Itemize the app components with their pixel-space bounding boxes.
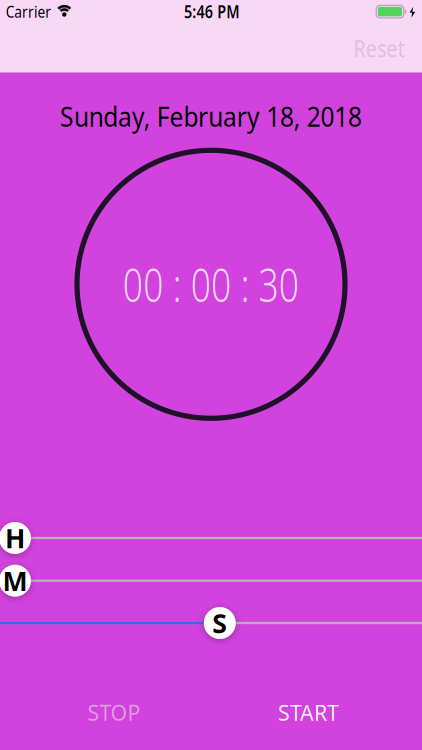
staticText: H: [5, 520, 25, 556]
staticText: Carrier: [2, 1, 55, 22]
button[interactable]: H slider: [0, 522, 31, 554]
staticText: Sunday, February 18, 2018: [47, 99, 375, 134]
staticText: 5:46 PM: [178, 0, 245, 23]
button[interactable]: STOP: [87, 698, 140, 727]
staticText: M: [2, 563, 27, 598]
button[interactable]: S slider: [204, 607, 236, 639]
button[interactable]: M slider: [0, 565, 31, 597]
staticText: S: [212, 605, 227, 641]
staticText: 00 : 00 : 30: [98, 254, 324, 315]
button[interactable]: START: [278, 698, 339, 727]
button[interactable]: Reset: [348, 32, 411, 64]
staticText: START: [278, 698, 339, 727]
staticText: Reset: [348, 32, 411, 64]
staticText: STOP: [87, 698, 140, 727]
